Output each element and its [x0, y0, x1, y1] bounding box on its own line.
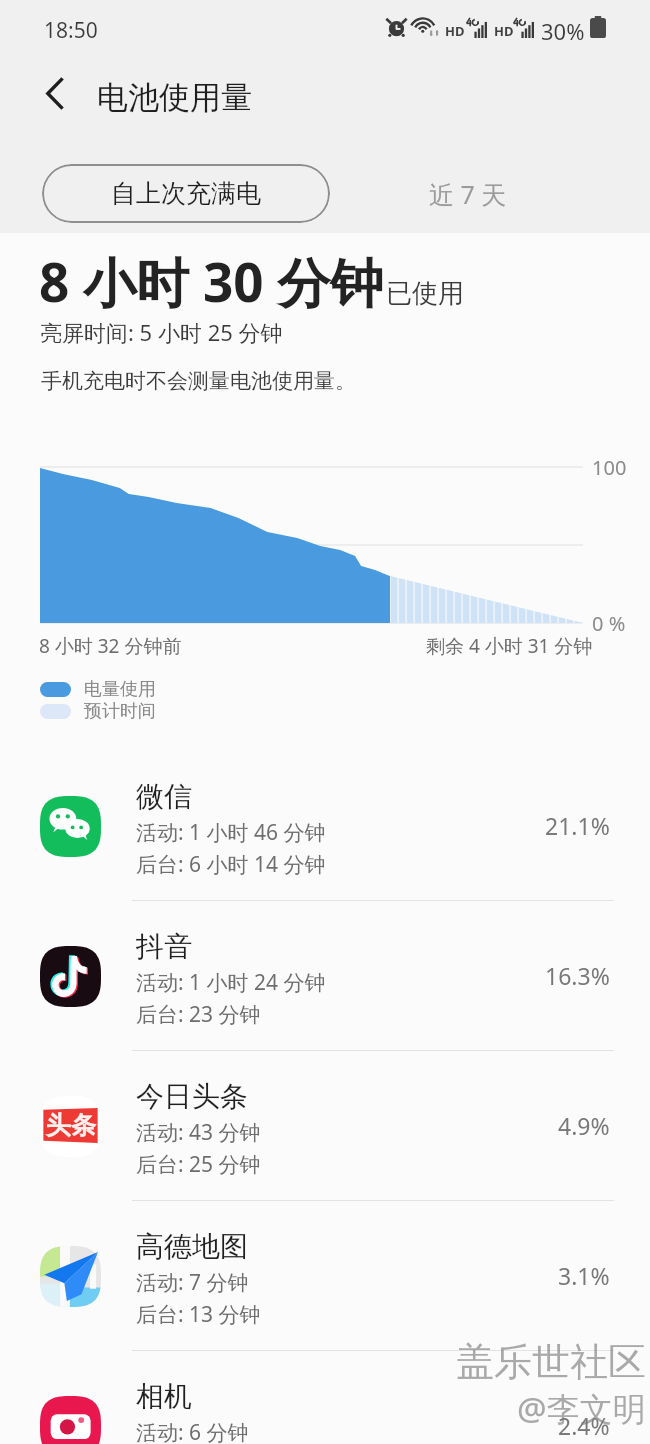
staticText: 手机充电时不会测量电池使用量。 — [41, 368, 356, 394]
button[interactable]: 高德地图 — [0, 1201, 650, 1350]
staticText: 抖音 — [136, 929, 192, 964]
staticText: 后台: 6 小时 14 分钟 — [136, 850, 326, 879]
staticText: 自上次充满电 — [111, 178, 261, 209]
staticText: HD — [445, 22, 465, 40]
staticText: 后台: 13 分钟 — [136, 1300, 261, 1329]
staticText: 后台: 25 分钟 — [136, 1150, 261, 1179]
staticText: 18:50 — [44, 16, 98, 45]
button[interactable]: Back — [28, 69, 80, 117]
staticText: @李文明 — [517, 1386, 646, 1431]
staticText: 100 — [592, 454, 627, 481]
staticText: 8 小时 30 分钟 — [39, 245, 384, 317]
button[interactable]: 相机 — [0, 1351, 650, 1444]
staticText: 剩余 4 小时 31 分钟 — [426, 633, 593, 659]
staticText: 8 小时 32 分钟前 — [39, 633, 182, 659]
staticText: 30% — [541, 16, 585, 46]
staticText: 2.4% — [558, 1410, 610, 1441]
staticText: 活动: 7 分钟 — [136, 1268, 249, 1297]
button[interactable]: 头条 — [0, 1051, 650, 1200]
staticText: 活动: 1 小时 46 分钟 — [136, 818, 326, 847]
staticText: 3.1% — [558, 1260, 610, 1291]
button[interactable]: 微信 — [0, 751, 650, 900]
button[interactable]: 抖音 — [0, 901, 650, 1050]
staticText: 今日头条 — [136, 1079, 248, 1114]
staticText: 亮屏时间: 5 小时 25 分钟 — [40, 317, 283, 347]
staticText: 盖乐世社区 — [456, 1338, 646, 1386]
staticText: 16.3% — [545, 960, 610, 991]
button[interactable]: 自上次充满电 — [42, 164, 330, 223]
staticText: 相机 — [136, 1379, 192, 1414]
staticText: 活动: 43 分钟 — [136, 1118, 261, 1147]
staticText: 活动: 1 小时 24 分钟 — [136, 968, 326, 997]
staticText: HD — [494, 22, 514, 40]
button[interactable]: 近 7 天 — [373, 164, 563, 223]
staticText: 电池使用量 — [97, 78, 252, 117]
staticText: 21.1% — [545, 810, 610, 841]
staticText: 微信 — [136, 779, 192, 814]
staticText: 0 % — [592, 610, 626, 637]
staticText: 近 7 天 — [429, 177, 507, 211]
staticText: 头条 — [46, 1110, 96, 1141]
staticText: 后台: 23 分钟 — [136, 1000, 261, 1029]
staticText: 电量使用 — [84, 678, 156, 701]
staticText: 预计时间 — [84, 700, 156, 723]
staticText: 活动: 6 分钟 — [136, 1418, 249, 1444]
staticText: 已使用 — [386, 277, 464, 310]
staticText: 4.9% — [558, 1110, 610, 1141]
staticText: 高德地图 — [136, 1229, 248, 1264]
